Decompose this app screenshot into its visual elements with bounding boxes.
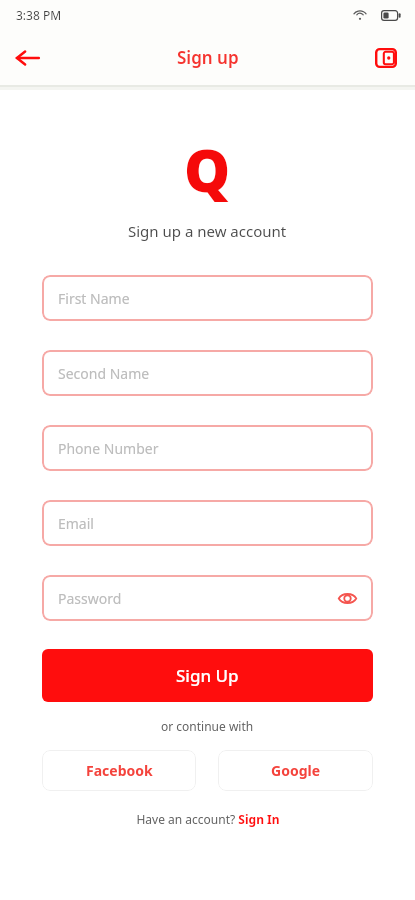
staticText: Google — [271, 761, 321, 780]
staticText: Password — [58, 589, 122, 608]
staticText: Sign up — [177, 46, 239, 69]
button[interactable]: Google — [218, 750, 373, 791]
button[interactable]: Have an account? Sign In — [136, 811, 280, 827]
button[interactable]: Second Name — [42, 350, 373, 396]
staticText: Facebook — [86, 761, 153, 780]
button[interactable]: Email — [42, 500, 373, 546]
staticText: 3:38 PM — [16, 7, 62, 23]
button[interactable]: Back — [8, 38, 48, 78]
staticText: Email — [58, 514, 94, 533]
button[interactable]: Phone Number — [42, 425, 373, 471]
button[interactable]: Facebook — [42, 750, 196, 791]
button[interactable]: Show password — [333, 584, 361, 612]
button[interactable]: Password — [42, 575, 373, 621]
staticText: Sign up a new account — [128, 221, 287, 241]
staticText: Phone Number — [58, 439, 159, 458]
staticText: Q — [184, 130, 231, 209]
staticText: Second Name — [58, 364, 150, 383]
button[interactable]: Sign Up — [42, 649, 373, 702]
button[interactable]: First Name — [42, 275, 373, 321]
staticText: Sign Up — [176, 664, 239, 687]
button[interactable]: Wallet — [367, 39, 405, 77]
staticText: First Name — [58, 289, 130, 308]
staticText: or continue with — [161, 718, 254, 734]
staticText: Have an account? Sign In — [136, 811, 280, 827]
